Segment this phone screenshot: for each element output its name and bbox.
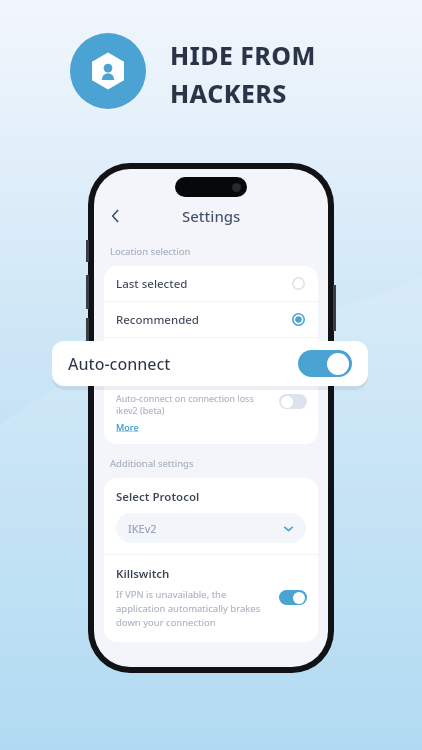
staticText: If VPN is unavailable, the application a…	[116, 588, 261, 629]
staticText: Last selected	[116, 276, 188, 292]
button[interactable]: Auto-connect on connection loss ikev2 (b…	[104, 383, 318, 444]
staticText: IKEv2	[128, 521, 157, 536]
button[interactable]: Auto-connect toggle, on	[298, 350, 352, 377]
staticText: Select Protocol	[116, 489, 200, 505]
button[interactable]: Toggle off	[279, 394, 307, 409]
button[interactable]: Auto-connect	[52, 341, 368, 386]
other: Privacy shield	[70, 33, 146, 109]
button[interactable]: Back	[104, 204, 128, 228]
button[interactable]: Last selected	[104, 266, 318, 301]
staticText: Killswitch	[116, 566, 170, 582]
staticText: Recommended	[116, 312, 199, 328]
button[interactable]: Recommended	[104, 302, 318, 337]
button[interactable]: IKEv2	[116, 513, 306, 543]
staticText: HACKERS	[170, 76, 287, 110]
staticText: HIDE FROM	[170, 38, 316, 72]
staticText: More	[116, 421, 139, 433]
button[interactable]: More	[116, 421, 139, 433]
staticText: Location selection	[110, 245, 191, 258]
staticText: Additional settings	[110, 457, 194, 470]
staticText: Settings	[182, 206, 241, 226]
button[interactable]: Toggle on	[279, 590, 307, 605]
staticText: Auto-connect on connection loss ikev2 (b…	[116, 392, 254, 417]
button[interactable]: Killswitch	[104, 555, 318, 642]
staticText: Auto-connect	[68, 353, 171, 375]
